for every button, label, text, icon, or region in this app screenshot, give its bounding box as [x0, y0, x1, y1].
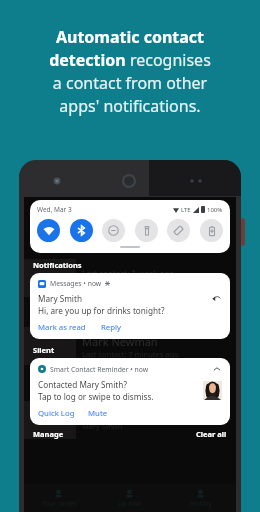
staticText: Notifications: [33, 260, 82, 270]
staticText: Overdue since: 1 day ago: [82, 279, 171, 289]
staticText: Tap to log or swipe to dismiss.: [38, 391, 154, 402]
button[interactable]: Bluetooth: [70, 219, 93, 242]
button[interactable]: Quick Log: [38, 408, 75, 419]
staticText: Up next: [118, 499, 142, 508]
button[interactable]: Collapse: [212, 364, 222, 374]
button[interactable]: Clear all: [196, 429, 227, 439]
button[interactable]: Reply: [101, 322, 122, 333]
staticText: Your circles: [42, 499, 77, 508]
staticText: Contacted Mary Smith?: [38, 379, 127, 390]
staticText: History: [190, 499, 212, 508]
button[interactable]: Wi-Fi: [37, 219, 60, 242]
button[interactable]: Battery saver: [200, 219, 223, 242]
button[interactable]: Messages • now: [30, 273, 230, 339]
button[interactable]: Manage: [33, 429, 64, 439]
button[interactable]: Smart Contact Reminder • now: [30, 358, 230, 425]
staticText: Mary Smith: [38, 293, 82, 304]
button[interactable]: Mute: [88, 408, 108, 419]
staticText: Last contact: 7 minutes ago: [82, 349, 179, 359]
button[interactable]: Do not disturb: [102, 219, 125, 242]
staticText: Wed, Mar 3: [37, 205, 72, 214]
staticText: Smart Contact Reminder • now: [50, 365, 149, 374]
staticText: 100%: [207, 206, 223, 214]
button[interactable]: Auto rotate: [167, 219, 190, 242]
staticText: Messages • now: [50, 279, 102, 288]
staticText: Hi, are you up for drinks tonight?: [38, 305, 165, 316]
staticText: Mark Newman: [82, 334, 158, 349]
staticText: Silent: [33, 345, 55, 355]
staticText: Mary Smith: [82, 421, 123, 431]
staticText: LTE: [181, 206, 191, 214]
button[interactable]: Reply: [210, 293, 222, 305]
staticText: GET IN TOUCH LOG CO: [82, 410, 177, 421]
staticText: Automatic contact detection recognises a…: [8, 26, 252, 117]
button[interactable]: Mark as read: [38, 322, 86, 333]
button[interactable]: Flashlight: [135, 219, 158, 242]
staticText: Last contact: 1 week ago: [82, 268, 174, 279]
